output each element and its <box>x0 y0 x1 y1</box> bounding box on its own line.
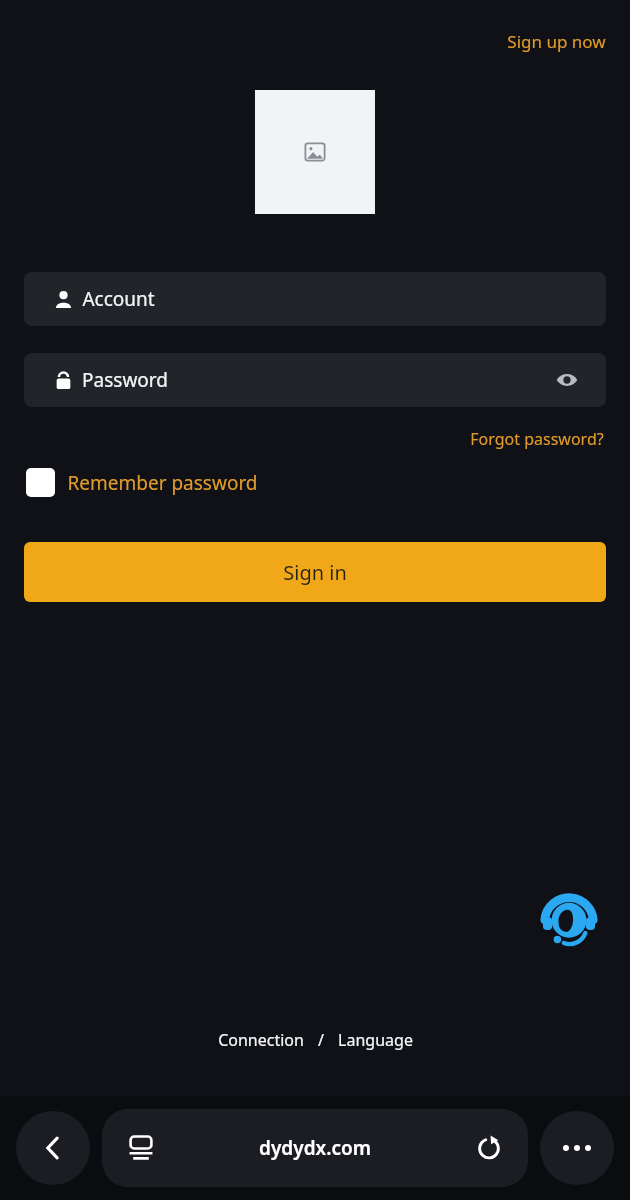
button[interactable]: Page settings <box>124 1131 158 1165</box>
button[interactable]: Remember password <box>24 464 260 501</box>
button[interactable]: Password <box>24 353 606 407</box>
button[interactable]: Connection <box>212 1025 310 1055</box>
staticText: dydydx.com <box>259 1135 371 1161</box>
staticText: Sign up now <box>507 30 606 53</box>
staticText: Sign in <box>283 559 347 586</box>
staticText: Password <box>82 367 168 393</box>
button[interactable]: Reload <box>472 1131 506 1165</box>
button[interactable]: Page settings <box>102 1109 528 1187</box>
staticText: / <box>318 1029 324 1051</box>
button[interactable]: More options <box>540 1111 614 1185</box>
staticText: Language <box>338 1029 413 1051</box>
button[interactable]: Forgot password? <box>466 425 608 453</box>
button[interactable]: Customer support <box>538 891 600 953</box>
staticText: Forgot password? <box>470 428 604 450</box>
button[interactable]: Show password <box>550 363 584 397</box>
button[interactable]: Language <box>332 1025 419 1055</box>
staticText: Account <box>82 286 155 312</box>
button[interactable]: Account <box>24 272 606 326</box>
button[interactable]: Sign in <box>24 542 606 602</box>
button[interactable]: Sign up now <box>501 26 612 57</box>
staticText: Remember password <box>67 470 258 496</box>
button[interactable]: Back <box>16 1111 90 1185</box>
staticText: Connection <box>218 1029 304 1051</box>
